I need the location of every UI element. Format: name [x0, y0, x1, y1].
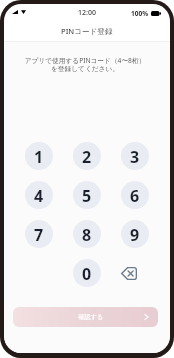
staticText: 7 [34, 224, 44, 246]
staticText: 1 [34, 146, 44, 168]
staticText: 4 [34, 185, 44, 207]
staticText: 9 [130, 224, 140, 246]
button[interactable]: 4 [25, 181, 53, 209]
button[interactable]: 5 [73, 181, 101, 209]
staticText: 6 [130, 185, 140, 207]
staticText: 0 [82, 263, 92, 285]
staticText: 100% [131, 9, 149, 18]
staticText: アプリで使用するPINコード（4〜8桁） を登録してください。 [4, 56, 168, 73]
button[interactable]: 6 [121, 181, 149, 209]
staticText: 5 [82, 185, 92, 207]
staticText: 2 [82, 146, 92, 168]
staticText: PINコード登録 [61, 26, 113, 36]
button[interactable]: 0 [73, 259, 101, 287]
button[interactable]: 9 [121, 220, 149, 248]
button[interactable]: 2 [73, 142, 101, 170]
button[interactable]: Backspace [115, 259, 143, 287]
staticText: 8 [82, 224, 92, 246]
button[interactable]: 7 [25, 220, 53, 248]
button[interactable]: 確認する [13, 307, 158, 327]
button[interactable]: 8 [73, 220, 101, 248]
button[interactable]: 3 [121, 142, 149, 170]
staticText: 3 [130, 146, 140, 168]
button[interactable]: 1 [25, 142, 53, 170]
staticText: 12:00 [78, 8, 96, 18]
staticText: 確認する [78, 313, 104, 321]
